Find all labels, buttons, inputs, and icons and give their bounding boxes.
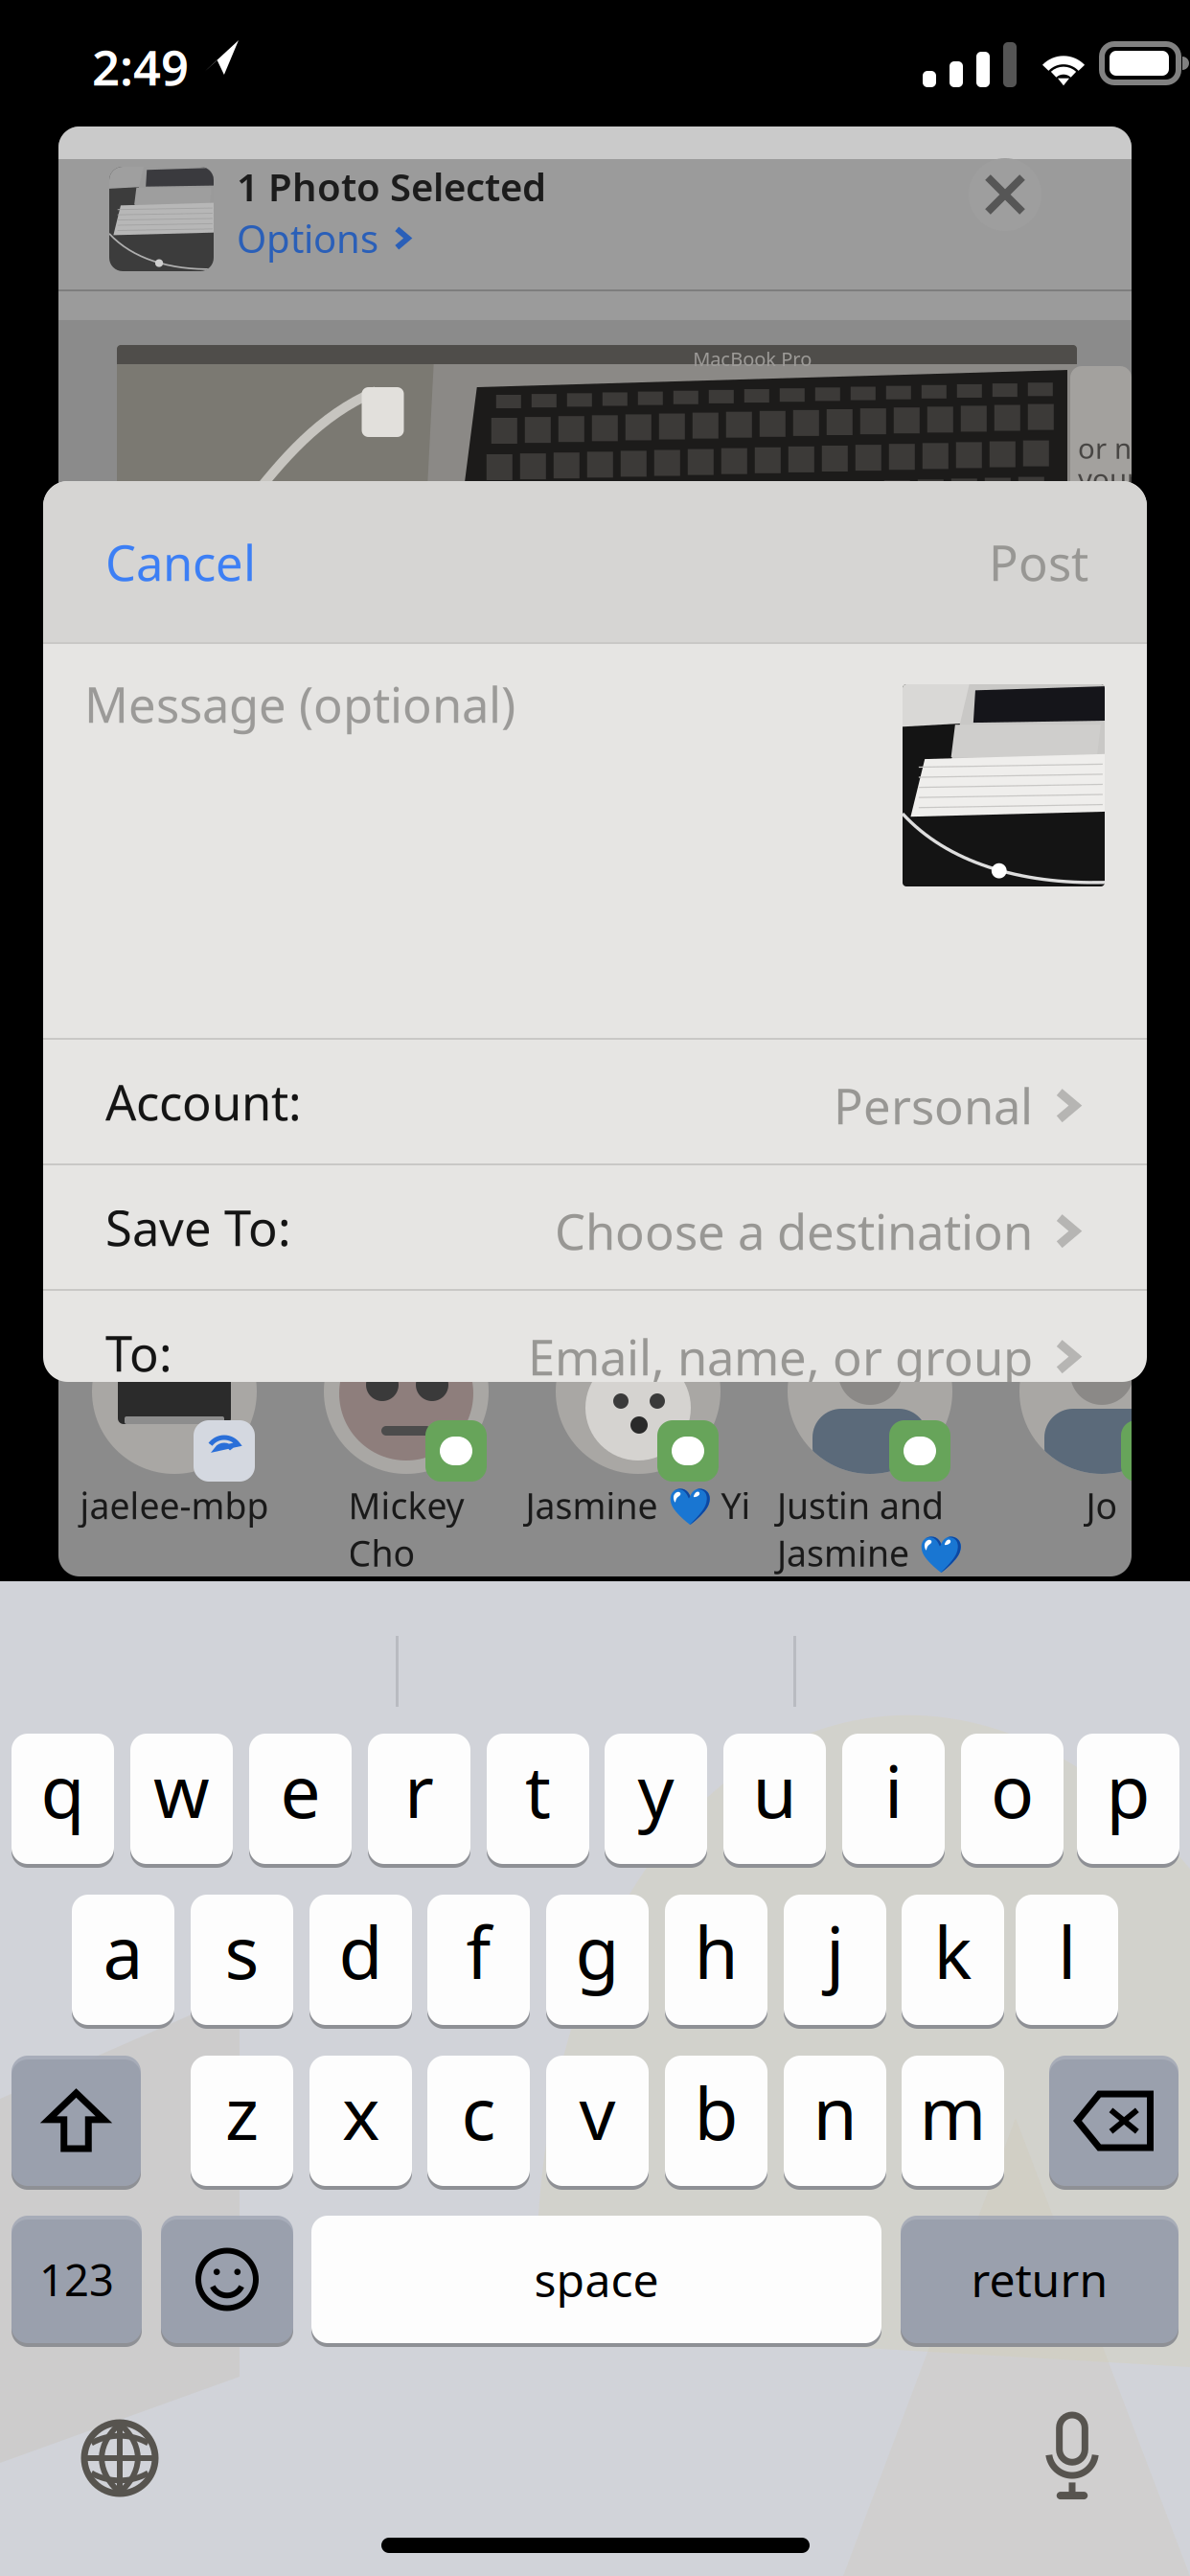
staticText: s [225, 1904, 259, 1999]
staticText: To: [105, 1321, 172, 1385]
staticText: Jasmine 💙 Yi [526, 1482, 751, 1529]
staticText: w [153, 1743, 210, 1838]
staticText: space [534, 2249, 659, 2310]
button[interactable]: v [546, 2056, 649, 2186]
staticText: g [575, 1904, 619, 1999]
button[interactable]: Jasmine 💙 Yi [560, 1309, 751, 1577]
button[interactable]: r [368, 1734, 470, 1864]
staticText: 123 [39, 2251, 114, 2308]
button[interactable]: Mickey Cho [328, 1309, 519, 1577]
button[interactable]: g [546, 1895, 649, 2025]
staticText: Post [989, 530, 1088, 594]
button[interactable]: Post [977, 509, 1100, 616]
staticText: n [813, 2065, 857, 2160]
button[interactable]: Justin and Jasmine 💙 [791, 1309, 983, 1577]
button[interactable]: b [665, 2056, 767, 2186]
staticText: jaelee-mbp [80, 1482, 269, 1529]
button[interactable]: e [249, 1734, 352, 1864]
button[interactable]: 123 [11, 2216, 142, 2343]
staticText: Save To: [105, 1195, 291, 1260]
button[interactable]: i [842, 1734, 945, 1864]
button[interactable]: p [1077, 1734, 1179, 1864]
button[interactable]: f [427, 1895, 530, 2025]
staticText: e [280, 1743, 320, 1838]
button[interactable]: q [11, 1734, 114, 1864]
button[interactable]: space [311, 2216, 881, 2343]
staticText: k [934, 1904, 972, 1999]
button[interactable]: Account: [43, 1038, 1147, 1163]
staticText: Justin and Jasmine 💙 [777, 1482, 963, 1577]
staticText: Account: [105, 1069, 302, 1134]
button[interactable]: j [784, 1895, 886, 2025]
button[interactable]: n [784, 2056, 886, 2186]
staticText: 2:49 [92, 34, 189, 99]
staticText: b [694, 2065, 738, 2160]
staticText: or no [1078, 429, 1149, 467]
button[interactable]: s [191, 1895, 293, 2025]
staticText: j [826, 1904, 844, 1999]
staticText: MacBook Pro [693, 346, 812, 371]
button[interactable]: w [130, 1734, 233, 1864]
button[interactable]: Save To: [43, 1163, 1147, 1289]
button[interactable]: return [901, 2216, 1179, 2343]
button[interactable]: y [605, 1734, 707, 1864]
staticText: Email, name, or group [528, 1324, 1033, 1389]
staticText: c [461, 2065, 496, 2160]
staticText: m [919, 2065, 986, 2160]
button[interactable]: To: [43, 1289, 1147, 1414]
button[interactable]: Jo [1023, 1309, 1190, 1577]
staticText: f [466, 1904, 491, 1999]
staticText: d [339, 1904, 383, 1999]
staticText: z [225, 2065, 259, 2160]
button[interactable]: u [723, 1734, 826, 1864]
staticText: Mickey Cho [348, 1482, 464, 1577]
button[interactable]: c [427, 2056, 530, 2186]
staticText: Personal [834, 1073, 1033, 1138]
staticText: i [884, 1743, 903, 1838]
button[interactable]: Options [237, 213, 413, 264]
button[interactable]: d [309, 1895, 412, 2025]
button[interactable]: l [1016, 1895, 1118, 2025]
staticText: h [694, 1904, 738, 1999]
button[interactable]: Emoji [161, 2216, 293, 2343]
staticText: t [525, 1743, 551, 1838]
button[interactable]: Shift [11, 2056, 141, 2186]
button[interactable]: x [309, 2056, 412, 2186]
button[interactable]: Delete [1049, 2056, 1179, 2186]
button[interactable]: o [961, 1734, 1064, 1864]
staticText: your ca [1078, 460, 1175, 497]
staticText: x [342, 2065, 379, 2160]
button[interactable]: Next keyboard [84, 2423, 155, 2494]
button[interactable]: Cancel [94, 509, 267, 616]
staticText: a [103, 1904, 143, 1999]
staticText: Options [237, 213, 378, 264]
staticText: v [579, 2065, 616, 2160]
button[interactable]: Dictation [1044, 2415, 1100, 2499]
button[interactable]: z [191, 2056, 293, 2186]
staticText: q [41, 1743, 85, 1838]
button[interactable]: h [665, 1895, 767, 2025]
staticText: l [1058, 1904, 1076, 1999]
staticText: Message (optional) [84, 672, 515, 736]
button[interactable]: m [902, 2056, 1004, 2186]
button[interactable]: a [72, 1895, 174, 2025]
staticText: 1 Photo Selected [237, 161, 546, 212]
staticText: return [971, 2249, 1108, 2310]
staticText: u [753, 1743, 797, 1838]
staticText: p [1106, 1743, 1150, 1838]
button[interactable]: t [487, 1734, 589, 1864]
staticText: Cancel [105, 530, 256, 594]
button[interactable]: Close [969, 158, 1041, 231]
button[interactable]: jaelee-mbp [96, 1309, 287, 1577]
staticText: o [991, 1743, 1034, 1838]
button[interactable]: k [902, 1895, 1004, 2025]
staticText: r [404, 1743, 434, 1838]
staticText: y [638, 1743, 674, 1838]
staticText: Jo [1086, 1482, 1118, 1529]
staticText: Choose a destination [555, 1199, 1033, 1263]
